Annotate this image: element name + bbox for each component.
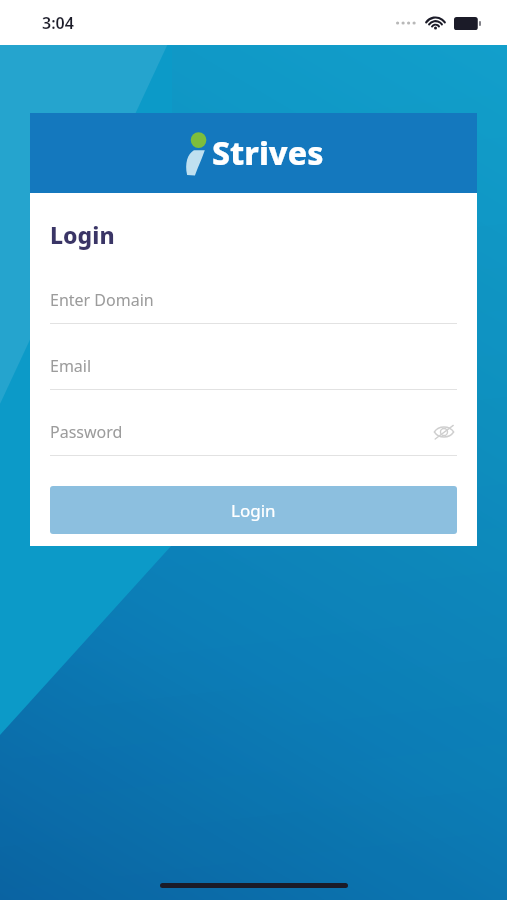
staticText: Email [50, 355, 92, 377]
staticText: Enter Domain [50, 289, 154, 311]
staticText: 3:04 [42, 12, 74, 34]
button[interactable]: Login [50, 486, 457, 534]
button[interactable]: Email [50, 352, 457, 390]
button[interactable]: Password [50, 418, 457, 456]
button[interactable]: Show password [431, 419, 457, 445]
button[interactable]: Enter Domain [50, 286, 457, 324]
staticText: Password [50, 421, 123, 443]
staticText: Login [231, 499, 276, 522]
staticText: Login [50, 219, 115, 250]
staticText: Strives [212, 131, 324, 175]
